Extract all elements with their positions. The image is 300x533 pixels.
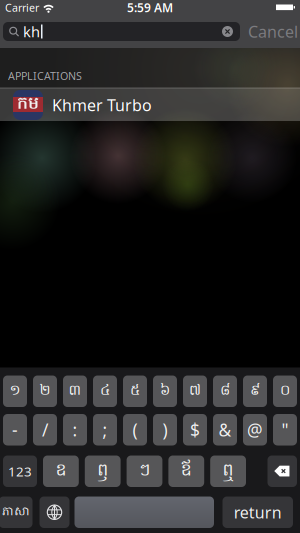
staticText: / <box>42 418 48 441</box>
button[interactable]: 123 <box>3 455 37 487</box>
staticText: ៩ <box>250 381 260 402</box>
button[interactable]: ៩ <box>243 375 267 407</box>
button[interactable]: ៥ <box>123 375 147 407</box>
staticText: Khmer Turbo <box>52 94 152 116</box>
staticText: Cancel <box>248 21 298 42</box>
button[interactable]: កម <box>0 87 300 121</box>
staticText: APPLICATIONS <box>8 69 82 83</box>
button[interactable]: Cancel <box>248 21 298 42</box>
staticText: ឪ <box>181 459 192 484</box>
staticText: ៥ <box>130 381 140 402</box>
staticText: & <box>218 418 231 441</box>
staticText: 5:59 AM <box>127 0 173 15</box>
button[interactable]: Clear text <box>222 26 233 37</box>
button[interactable]: ) <box>153 414 177 445</box>
staticText: កម <box>17 92 39 117</box>
button[interactable]: ៦ <box>153 375 177 407</box>
staticText: ៧ <box>189 381 201 402</box>
staticText: ៦ <box>160 381 170 402</box>
staticText: @ <box>247 418 263 441</box>
button[interactable]: Space <box>74 496 214 528</box>
button[interactable]: : <box>63 414 87 445</box>
button[interactable]: ២ <box>33 375 57 407</box>
staticText: ៗ <box>139 459 150 484</box>
button[interactable]: - <box>3 414 27 445</box>
button[interactable]: ៨ <box>213 375 237 407</box>
button[interactable]: " <box>273 414 297 445</box>
button[interactable]: ៧ <box>183 375 207 407</box>
button[interactable]: ភាសា <box>0 496 32 528</box>
staticText: ភាសា <box>2 504 29 521</box>
staticText: ២ <box>39 381 50 402</box>
button[interactable]: ឭ <box>85 455 121 487</box>
staticText: ៨ <box>220 381 230 402</box>
button[interactable]: ឧ <box>43 455 79 487</box>
staticText: return <box>234 502 282 523</box>
button[interactable]: Search <box>3 22 240 41</box>
staticText: ; <box>102 418 107 441</box>
staticText: ( <box>132 418 137 441</box>
staticText: ) <box>162 418 167 441</box>
staticText: $ <box>190 418 200 441</box>
button[interactable]: ៗ <box>127 455 162 487</box>
staticText: " <box>281 418 288 441</box>
staticText: ឭ <box>97 459 108 484</box>
button[interactable]: Delete <box>267 455 297 487</box>
staticText: kh <box>23 22 40 41</box>
button[interactable]: ០ <box>273 375 297 407</box>
staticText: - <box>12 418 18 441</box>
staticText: ០ <box>280 381 290 402</box>
button[interactable]: @ <box>243 414 267 445</box>
button[interactable]: ( <box>123 414 147 445</box>
staticText: ឮ <box>223 459 234 484</box>
staticText: 123 <box>8 462 32 480</box>
staticText: Carrier <box>5 0 39 15</box>
staticText: : <box>72 418 77 441</box>
button[interactable]: ៣ <box>63 375 87 407</box>
button[interactable]: / <box>33 414 57 445</box>
staticText: ឧ <box>55 459 66 484</box>
button[interactable]: ឪ <box>168 455 204 487</box>
staticText: ៤ <box>100 381 110 402</box>
button[interactable]: Next keyboard <box>39 496 69 528</box>
button[interactable]: ១ <box>3 375 27 407</box>
staticText: ១ <box>9 381 20 402</box>
button[interactable]: $ <box>183 414 207 445</box>
button[interactable]: ; <box>93 414 117 445</box>
button[interactable]: ឮ <box>210 455 246 487</box>
staticText: ៣ <box>68 381 81 402</box>
button[interactable]: return <box>222 496 293 528</box>
button[interactable]: & <box>213 414 237 445</box>
button[interactable]: ៤ <box>93 375 117 407</box>
